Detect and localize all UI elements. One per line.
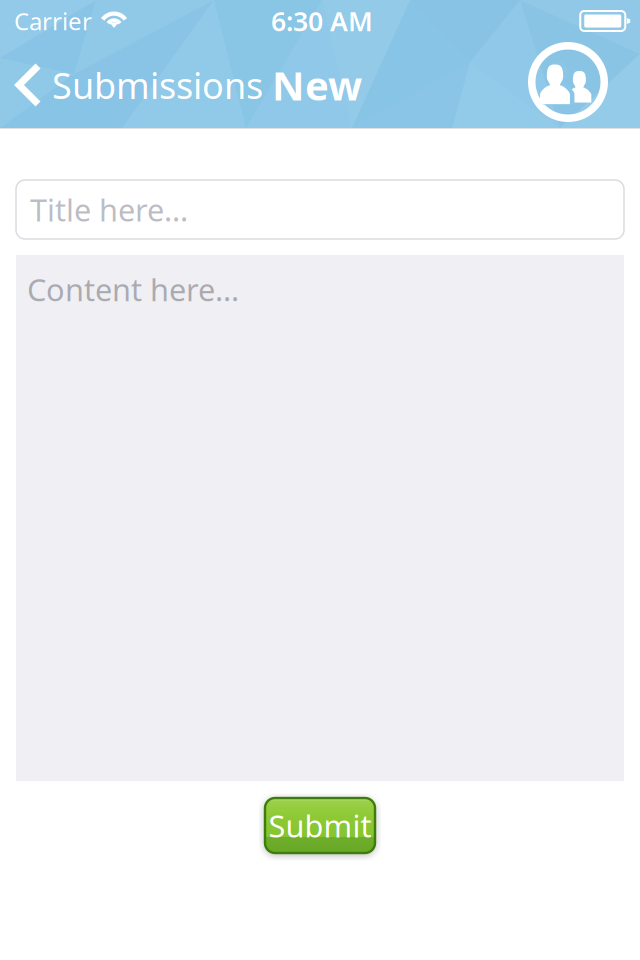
staticText: New	[272, 58, 362, 111]
staticText: Title here...	[30, 189, 188, 230]
button[interactable]: Members	[528, 42, 640, 128]
staticText: Submit	[268, 805, 371, 846]
button[interactable]: Title here...	[16, 180, 624, 239]
staticText: Submissions	[52, 61, 263, 109]
staticText: 6:30 AM	[271, 3, 373, 39]
button[interactable]: Submit	[265, 798, 375, 853]
staticText: Carrier	[14, 5, 92, 37]
button[interactable]: Submissions	[0, 44, 267, 126]
button[interactable]: Content here...	[16, 255, 624, 781]
staticText: Content here...	[27, 269, 239, 310]
